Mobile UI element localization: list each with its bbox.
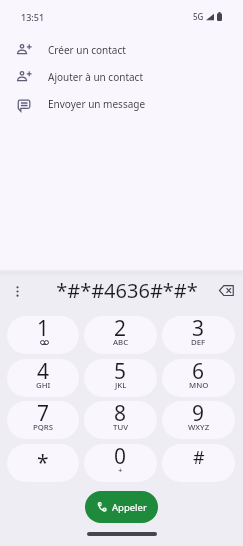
staticText: 5G [193,11,204,22]
button[interactable]: 0 [84,444,157,482]
button[interactable]: 7 [7,401,79,439]
button[interactable]: 1 [7,316,79,354]
staticText: Ajouter à un contact [48,70,144,84]
staticText: 9 [192,401,205,428]
staticText: 13:51 [21,11,45,23]
staticText: * [37,448,49,477]
staticText: JKL [115,380,127,391]
button[interactable]: Ajouter à un contact [0,63,243,90]
button[interactable]: Backspace [213,277,239,303]
staticText: 0 [114,444,127,471]
staticText: 7 [37,401,50,428]
staticText: GHI [36,380,51,391]
staticText: ABC [113,337,129,348]
staticText: 5 [114,359,127,386]
staticText: MNO [189,380,209,391]
staticText: 1 [37,316,50,343]
staticText: Créer un contact [48,43,126,57]
staticText: # [193,445,205,470]
staticText: *#*#4636#*#* [56,277,198,304]
button[interactable]: 6 [162,359,235,397]
staticText: 4 [37,359,50,386]
staticText: TUV [113,422,128,433]
staticText: DEF [191,337,206,348]
staticText: Appeler [112,501,147,514]
button[interactable]: 3 [162,316,235,354]
button[interactable]: 9 [162,401,235,439]
staticText: 6 [192,359,205,386]
button[interactable]: 4 [7,359,79,397]
button[interactable]: More options [5,279,29,303]
button[interactable]: Appeler [85,491,158,523]
staticText: + [118,465,123,476]
staticText: 8 [114,401,127,428]
button[interactable]: Envoyer un message [0,90,243,117]
button[interactable]: 5 [84,359,157,397]
staticText: 3 [192,316,205,343]
staticText: PQRS [33,422,54,433]
button[interactable]: Créer un contact [0,36,243,63]
staticText: 2 [114,316,127,343]
button[interactable]: 8 [84,401,157,439]
staticText: Envoyer un message [48,97,146,111]
staticText: WXYZ [188,422,210,433]
button[interactable]: * [7,444,79,482]
button[interactable]: # [162,444,235,482]
button[interactable]: 2 [84,316,157,354]
